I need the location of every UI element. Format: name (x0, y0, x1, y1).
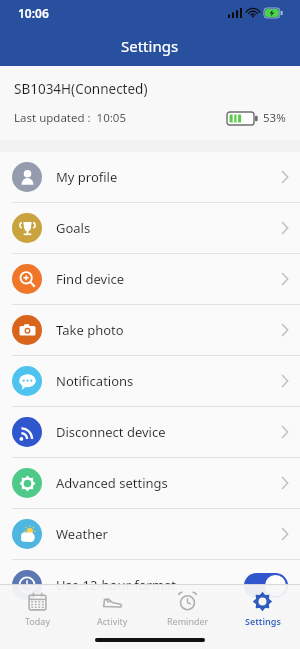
button[interactable]: Today (0, 585, 75, 633)
staticText: Reminder (167, 615, 209, 627)
staticText: Settings (245, 615, 281, 627)
button[interactable]: Weather (0, 509, 300, 559)
staticText: Use 12-hour format (56, 576, 177, 594)
button[interactable]: Reminder (150, 585, 225, 633)
staticText: Weather (56, 525, 108, 543)
button[interactable]: Find device (0, 254, 300, 304)
staticText: Disconnect device (56, 423, 166, 441)
staticText: Today (25, 615, 50, 627)
button[interactable]: Notifications (0, 356, 300, 406)
button[interactable]: My profile (0, 152, 300, 202)
button[interactable]: Advanced settings (0, 458, 300, 508)
staticText: SB1034H(Connected) (14, 80, 148, 98)
staticText: Find device (56, 270, 125, 288)
staticText: Take photo (56, 321, 124, 339)
staticText: My profile (56, 168, 118, 186)
button[interactable]: Take photo (0, 305, 300, 355)
staticText: Goals (56, 219, 91, 237)
staticText: 53% (263, 110, 286, 126)
button[interactable]: Toggle 12 hour format (244, 573, 288, 598)
button[interactable]: Goals (0, 203, 300, 253)
staticText: Last updated : 10:05 (14, 110, 126, 126)
staticText: 10:06 (18, 5, 49, 21)
button[interactable]: Disconnect device (0, 407, 300, 457)
staticText: Settings (121, 36, 179, 56)
button[interactable]: Settings (225, 585, 300, 633)
button[interactable]: Activity (75, 585, 150, 633)
staticText: Activity (97, 615, 128, 627)
button[interactable]: Use 12-hour format (0, 560, 300, 610)
staticText: Advanced settings (56, 474, 168, 492)
staticText: Notifications (56, 372, 134, 390)
